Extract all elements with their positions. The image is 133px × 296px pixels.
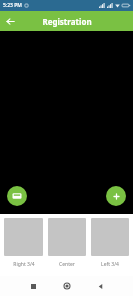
button[interactable]: Center (48, 218, 86, 268)
staticText: Right 3/4 (13, 261, 35, 268)
staticText: Left 3/4 (101, 261, 119, 268)
staticText: Center (59, 261, 75, 268)
button[interactable]: Add photo (106, 186, 126, 206)
button[interactable]: Back (0, 11, 20, 31)
button[interactable]: Recent apps (26, 279, 40, 293)
button[interactable]: Gallery (7, 186, 27, 206)
button[interactable]: Home (60, 279, 74, 293)
staticText: Registration (42, 16, 92, 27)
button[interactable]: Back (93, 279, 107, 293)
button[interactable]: Right 3/4 (4, 218, 43, 268)
staticText: 5:23 PM (3, 2, 22, 9)
button[interactable]: Left 3/4 (91, 218, 129, 268)
